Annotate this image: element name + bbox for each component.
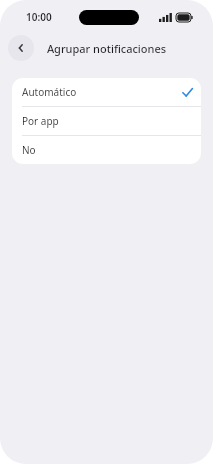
button[interactable]: Automático <box>12 78 201 106</box>
button[interactable]: Back <box>8 35 34 61</box>
button[interactable]: Por app <box>12 107 201 135</box>
button[interactable]: No <box>12 136 201 164</box>
staticText: Por app <box>22 114 59 128</box>
staticText: Agrupar notificaciones <box>0 41 213 56</box>
staticText: No <box>22 143 36 157</box>
staticText: Automático <box>22 85 77 99</box>
staticText: 10:00 <box>26 10 52 24</box>
